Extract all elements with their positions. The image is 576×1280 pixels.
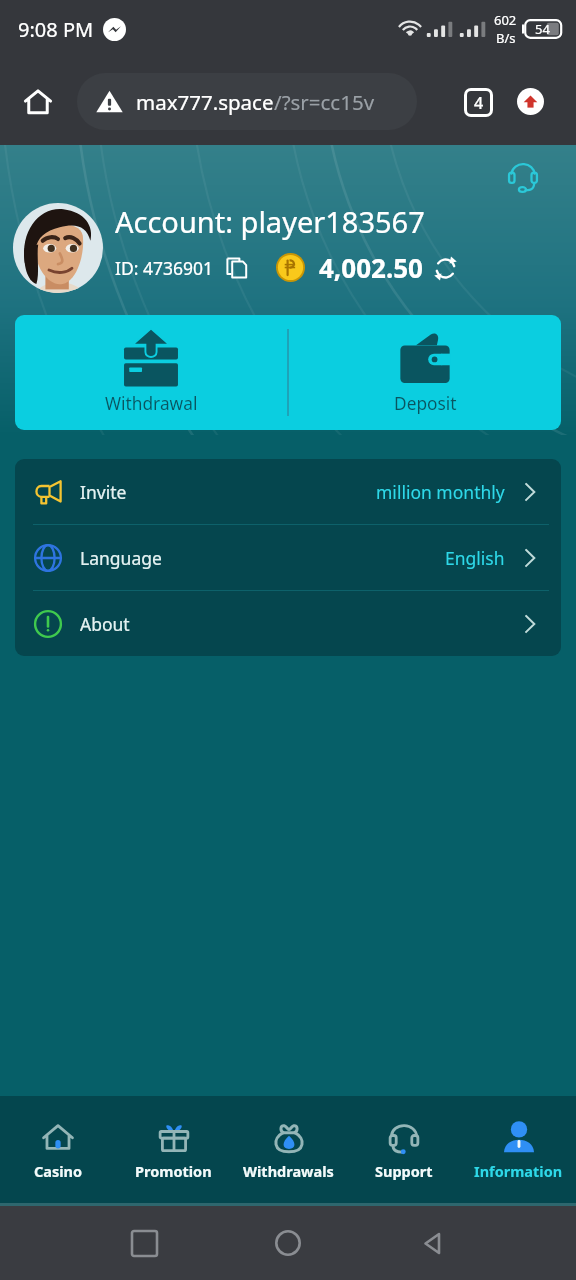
button[interactable]: Upload bbox=[517, 88, 544, 115]
staticText: Invite bbox=[80, 480, 127, 504]
staticText: /?sr=cc15v bbox=[274, 88, 375, 116]
button[interactable]: Copy ID bbox=[224, 255, 250, 281]
staticText: About bbox=[80, 612, 130, 636]
staticText: Deposit bbox=[394, 392, 457, 416]
button[interactable]: Withdrawal bbox=[15, 315, 287, 430]
staticText: million monthly bbox=[376, 480, 505, 504]
staticText: Account: player183567 bbox=[115, 202, 425, 241]
staticText: Withdrawals bbox=[243, 1161, 334, 1181]
staticText: Promotion bbox=[135, 1161, 212, 1181]
button[interactable]: Home bbox=[264, 1219, 312, 1267]
staticText: Casino bbox=[34, 1161, 83, 1181]
staticText: 4 bbox=[474, 92, 484, 114]
staticText: 9:08 PM bbox=[18, 16, 94, 43]
staticText: 602 bbox=[494, 11, 517, 29]
staticText: 4,002.50 bbox=[319, 250, 423, 285]
button[interactable]: Invite bbox=[15, 459, 561, 524]
staticText: ID: 4736901 bbox=[115, 256, 214, 280]
staticText: English bbox=[445, 546, 505, 570]
staticText: Withdrawal bbox=[105, 392, 198, 416]
button[interactable]: Information bbox=[461, 1096, 576, 1203]
button[interactable]: Support bbox=[346, 1096, 461, 1203]
button[interactable]: Back bbox=[408, 1219, 456, 1267]
staticText: Language bbox=[80, 546, 162, 570]
button[interactable]: Casino bbox=[0, 1096, 116, 1203]
staticText: B/s bbox=[496, 29, 516, 47]
button[interactable]: Tabs bbox=[458, 82, 498, 122]
button[interactable]: Deposit bbox=[289, 315, 561, 430]
button[interactable]: max777.space bbox=[77, 73, 417, 130]
button[interactable]: About bbox=[15, 591, 561, 656]
button[interactable]: Withdrawals bbox=[231, 1096, 346, 1203]
button[interactable]: Promotion bbox=[116, 1096, 231, 1203]
staticText: Support bbox=[375, 1161, 433, 1181]
staticText: Information bbox=[474, 1161, 563, 1181]
button[interactable]: Language bbox=[15, 525, 561, 590]
button[interactable]: Refresh balance bbox=[431, 254, 459, 282]
staticText: max777.space bbox=[136, 88, 274, 116]
button[interactable]: Profile avatar bbox=[13, 203, 103, 293]
staticText: 54 bbox=[535, 20, 550, 38]
button[interactable]: Home bbox=[14, 78, 62, 126]
button[interactable]: Recents bbox=[120, 1219, 168, 1267]
button[interactable]: Customer support bbox=[502, 156, 544, 198]
